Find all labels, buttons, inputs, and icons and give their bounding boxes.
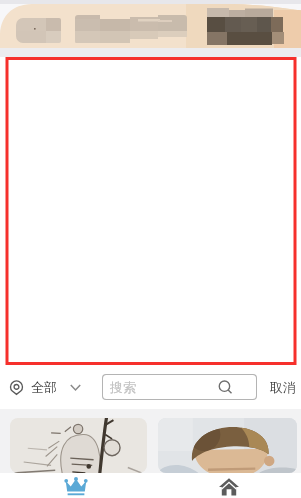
button[interactable]: 全部 <box>6 373 87 401</box>
button[interactable] <box>10 418 147 473</box>
staticText: 全部 <box>31 379 57 395</box>
staticText: 取消 <box>270 379 296 395</box>
button[interactable]: Home <box>214 475 244 498</box>
button[interactable]: 取消 <box>264 373 301 401</box>
button[interactable] <box>158 418 297 473</box>
staticText: 搜索 <box>110 379 136 395</box>
button[interactable]: 搜索 <box>103 375 256 399</box>
button[interactable]: VIP <box>61 475 91 498</box>
